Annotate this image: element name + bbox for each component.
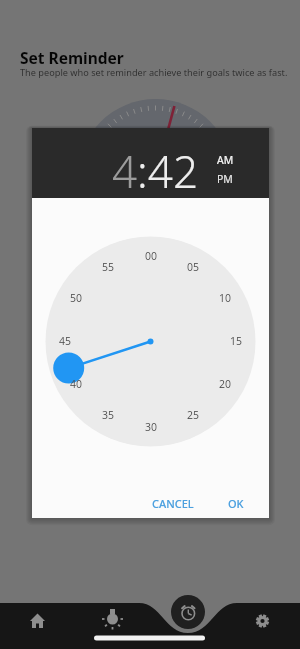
staticText: 15 [230,334,243,348]
staticText: 00 [145,249,158,263]
staticText: CANCEL [152,496,194,511]
button[interactable] [75,600,150,649]
staticText: 25 [187,408,200,422]
button[interactable]: CANCEL [140,488,205,518]
button[interactable] [150,600,225,649]
button[interactable] [225,600,300,649]
staticText: 30 [145,420,158,434]
button[interactable] [0,600,75,649]
button[interactable]: OK [217,488,254,518]
button[interactable]: AM [217,153,234,167]
staticText: 10 [219,291,232,305]
staticText: 45 [59,334,72,348]
staticText: Set Reminder [20,47,124,68]
staticText: 35 [102,408,115,422]
staticText: 40 [70,377,83,391]
staticText: 50 [70,291,83,305]
staticText: 4:42 [112,141,199,201]
staticText: 20 [219,377,232,391]
staticText: The people who set reminder achieve thei… [20,66,288,79]
staticText: 55 [102,260,115,274]
staticText: OK [228,496,244,511]
staticText: 05 [187,260,200,274]
button[interactable]: PM [217,172,233,186]
